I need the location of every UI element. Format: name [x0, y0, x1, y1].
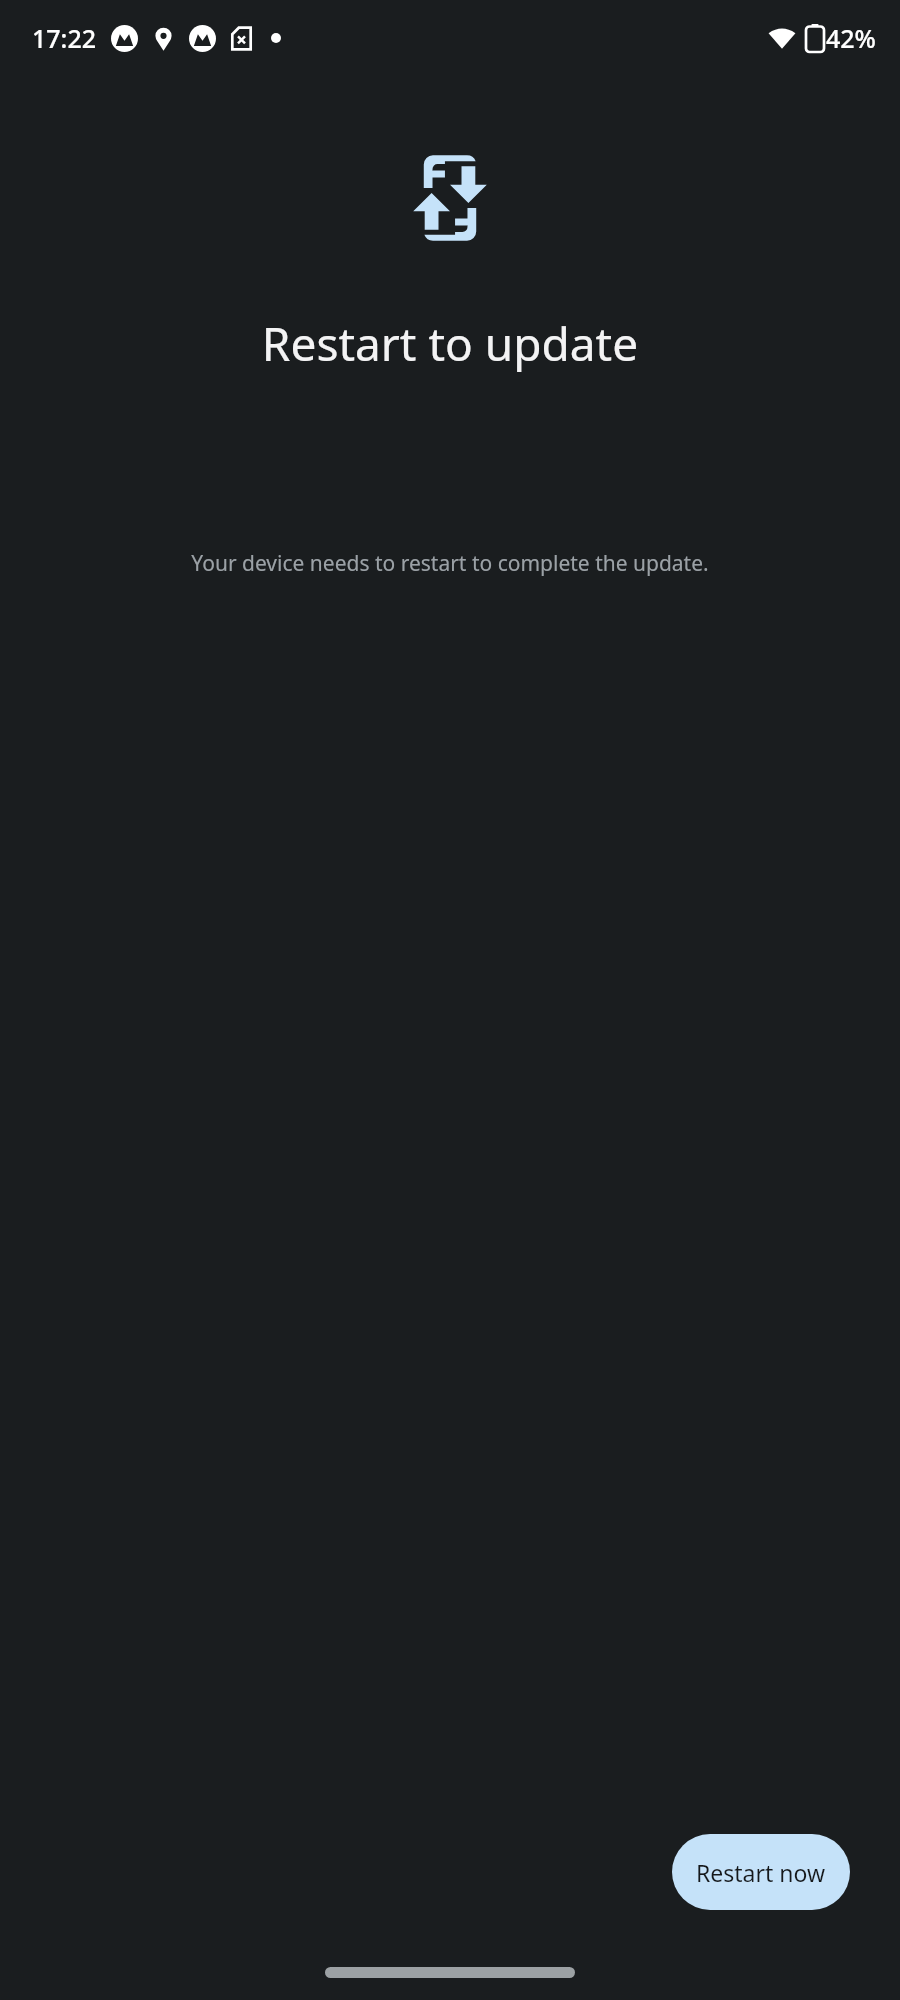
button[interactable]: Restart now [672, 1834, 850, 1910]
staticText: 42% [826, 21, 876, 55]
staticText: Restart to update [40, 312, 860, 375]
staticText: 17:22 [32, 21, 97, 55]
staticText: Restart now [696, 1857, 826, 1888]
other: Restart to update [404, 152, 496, 244]
staticText: Your device needs to restart to complete… [60, 549, 840, 578]
